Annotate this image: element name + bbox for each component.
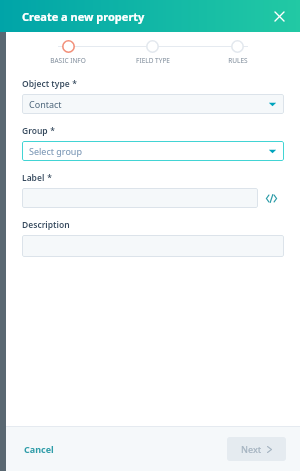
button[interactable]: BASIC INFO — [26, 40, 110, 65]
button[interactable]: Close — [268, 5, 290, 27]
staticText: Group — [22, 125, 48, 137]
staticText: Object type — [22, 78, 70, 90]
button[interactable]: Select group — [22, 141, 284, 161]
staticText: * — [45, 172, 52, 184]
staticText: BASIC INFO — [50, 56, 86, 65]
staticText: Next — [241, 443, 262, 455]
button[interactable] — [22, 235, 284, 257]
button[interactable]: Internal name — [258, 188, 284, 208]
staticText: Create a new property — [22, 9, 145, 24]
button[interactable] — [22, 188, 258, 208]
staticText: Description — [22, 219, 70, 231]
staticText: FIELD TYPE — [136, 56, 170, 65]
staticText: * — [48, 125, 55, 137]
staticText: Cancel — [24, 443, 54, 455]
staticText: RULES — [228, 56, 248, 65]
staticText: * — [70, 78, 77, 90]
button[interactable]: Next — [227, 437, 286, 461]
staticText: Contact — [29, 98, 268, 110]
button[interactable]: RULES — [195, 40, 280, 65]
staticText: Label — [22, 172, 45, 184]
button[interactable]: Contact — [22, 94, 284, 114]
staticText: Select group — [29, 145, 268, 157]
button[interactable]: FIELD TYPE — [110, 40, 195, 65]
button[interactable]: Cancel — [22, 439, 56, 459]
